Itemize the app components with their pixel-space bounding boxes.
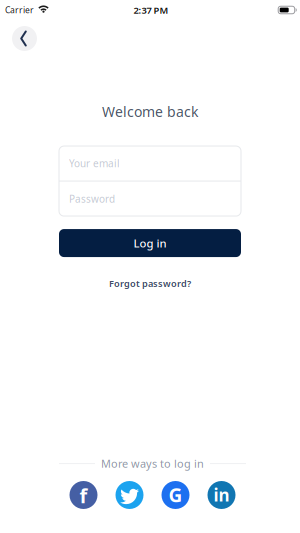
button[interactable]: Password — [59, 182, 241, 216]
button[interactable]: Log in with Google — [161, 481, 189, 509]
button[interactable]: Log in with Facebook — [69, 481, 97, 509]
button[interactable]: Forgot password? — [109, 277, 191, 290]
staticText: G — [168, 482, 182, 508]
staticText: Your email — [69, 156, 120, 170]
button[interactable]: Log in with Twitter — [115, 481, 143, 509]
staticText: More ways to log in — [101, 456, 204, 471]
button[interactable]: Back — [12, 26, 37, 51]
button[interactable]: Log in with LinkedIn — [207, 481, 235, 509]
staticText: Welcome back — [102, 102, 198, 121]
staticText: f — [79, 482, 87, 509]
button[interactable]: Log in — [59, 229, 241, 257]
staticText: in — [213, 483, 229, 507]
staticText: Password — [69, 192, 115, 206]
staticText: 2:37 PM — [133, 4, 168, 16]
button[interactable]: Your email — [59, 146, 241, 181]
staticText: Forgot password? — [109, 277, 191, 290]
staticText: Log in — [133, 235, 166, 251]
staticText: Carrier — [5, 4, 34, 16]
